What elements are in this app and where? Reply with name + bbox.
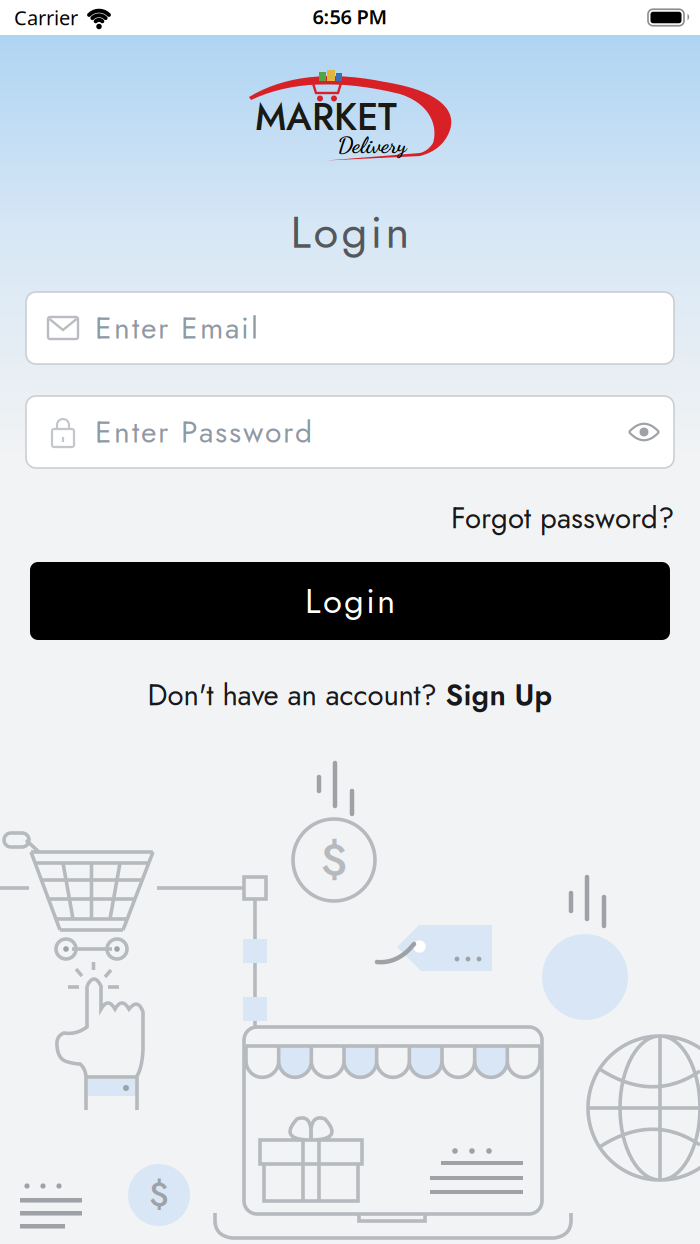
button[interactable]: Don't have an account? Sign Up	[147, 674, 552, 716]
staticText: Carrier	[14, 4, 78, 31]
staticText: MARKET	[255, 91, 397, 143]
staticText: E n t e r E m a i l	[95, 306, 258, 350]
staticText: L o g i n	[290, 199, 409, 265]
button[interactable]: Forgot password?	[451, 497, 674, 539]
staticText: $	[320, 827, 347, 893]
button[interactable]: L o g i n	[30, 562, 670, 640]
staticText: Delivery	[337, 131, 406, 159]
staticText: Don't have an account? Sign Up	[147, 674, 552, 716]
staticText: Forgot password?	[451, 497, 674, 539]
staticText: 6:56 PM	[312, 3, 387, 30]
button[interactable]: E n t e r P a s s w o r d	[26, 396, 674, 468]
button[interactable]: E n t e r E m a i l	[26, 292, 674, 364]
staticText: E n t e r P a s s w o r d	[95, 410, 312, 454]
staticText: $	[149, 1171, 169, 1219]
staticText: L o g i n	[305, 576, 395, 626]
